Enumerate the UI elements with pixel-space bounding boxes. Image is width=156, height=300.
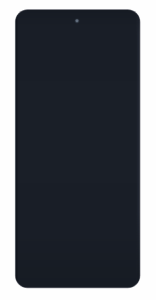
button[interactable]: Phone, front view, display off bbox=[0, 0, 156, 300]
